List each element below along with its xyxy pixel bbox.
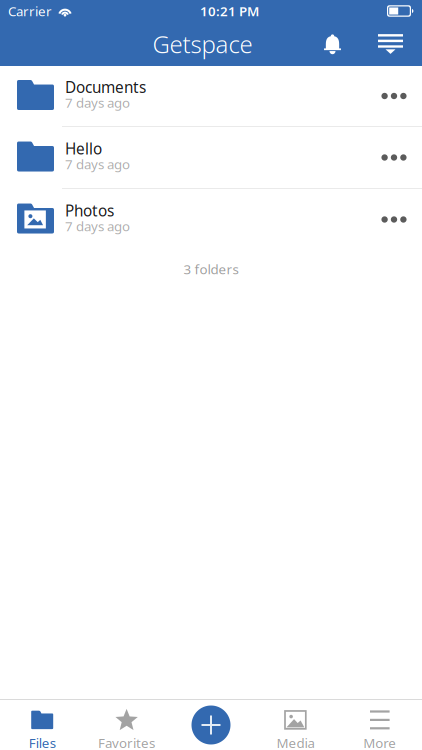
button[interactable]: Photos bbox=[0, 189, 366, 250]
button[interactable]: Sort bbox=[359, 22, 422, 66]
staticText: Favorites bbox=[98, 734, 155, 750]
staticText: Photos bbox=[65, 200, 114, 221]
staticText: Files bbox=[29, 734, 56, 750]
staticText: 7 days ago bbox=[65, 93, 130, 112]
staticText: 7 days ago bbox=[65, 155, 130, 173]
staticText: Media bbox=[276, 734, 314, 750]
button[interactable]: Documents bbox=[0, 66, 366, 126]
staticText: Getspace bbox=[152, 28, 252, 60]
staticText: Documents bbox=[65, 77, 146, 97]
button[interactable]: More options for Photos bbox=[366, 189, 422, 250]
staticText: Carrier bbox=[8, 2, 52, 20]
staticText: More bbox=[363, 734, 396, 750]
button[interactable]: Files bbox=[0, 700, 84, 750]
button[interactable]: More bbox=[338, 700, 422, 750]
button[interactable]: Favorites bbox=[84, 700, 169, 750]
staticText: 10:21 PM bbox=[200, 2, 259, 20]
button[interactable]: Add bbox=[169, 700, 253, 750]
staticText: 7 days ago bbox=[65, 217, 130, 235]
button[interactable]: More options for Documents bbox=[366, 66, 422, 126]
button[interactable]: Notifications bbox=[306, 22, 359, 66]
button[interactable]: Hello bbox=[0, 127, 366, 188]
button[interactable]: More options for Hello bbox=[366, 127, 422, 188]
button[interactable]: Media bbox=[253, 700, 338, 750]
staticText: 3 folders bbox=[183, 260, 238, 278]
staticText: Hello bbox=[65, 138, 102, 159]
